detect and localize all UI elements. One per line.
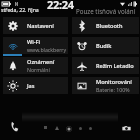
button[interactable]: Bluetooth [72, 17, 139, 34]
button[interactable]: Režim Letadlo [72, 57, 139, 74]
staticText: Normální [27, 66, 50, 73]
staticText: Oznámení [27, 58, 55, 66]
button[interactable]: Monitorování [72, 77, 139, 94]
staticText: Jas [27, 82, 35, 90]
button[interactable]: Jas [3, 77, 68, 94]
button[interactable]: Budík [72, 37, 139, 54]
button[interactable]: Wi-Fi [3, 37, 68, 54]
staticText: www.blackberry [27, 46, 67, 53]
staticText: středa, 22. října [1, 6, 39, 13]
button[interactable]: Nastavení [3, 17, 68, 34]
staticText: Pouze tísňová volání [76, 7, 136, 15]
staticText: Režim Letadlo [96, 62, 134, 70]
button[interactable]: Unlock [66, 126, 72, 132]
staticText: Budík [96, 42, 112, 50]
staticText: Baterie: 100% [96, 86, 130, 93]
button[interactable]: Phone [8, 120, 21, 133]
staticText: Bluetooth [96, 22, 123, 30]
button[interactable]: Page [79, 127, 82, 130]
staticText: Nastavení [27, 22, 54, 30]
button[interactable]: Oznámení [3, 57, 68, 74]
button[interactable]: Page 2 [89, 127, 92, 130]
staticText: Wi-Fi [27, 38, 41, 46]
staticText: Monitorování [96, 78, 132, 86]
button[interactable]: Home [55, 126, 59, 130]
button[interactable]: Camera [119, 122, 133, 134]
staticText: 22:24 [47, 0, 74, 12]
